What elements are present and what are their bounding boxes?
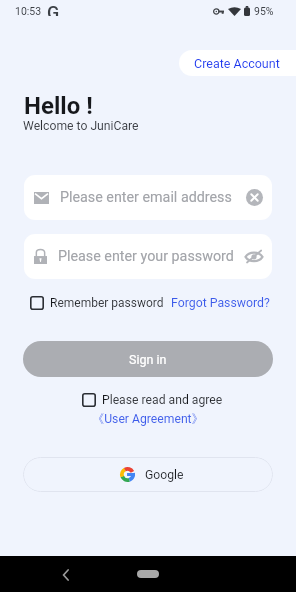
staticText: Forgot Password? — [171, 296, 270, 310]
staticText: Please read and agree — [102, 393, 223, 407]
button[interactable]: Sign in — [23, 341, 273, 377]
staticText: Please enter your password — [58, 248, 234, 265]
button[interactable]: Google — [23, 457, 273, 492]
staticText: Create Account — [194, 56, 280, 71]
button[interactable]: Please read and agree — [82, 393, 223, 407]
button[interactable]: Show password — [245, 249, 263, 264]
staticText: Google — [145, 468, 184, 482]
staticText: 95% — [254, 5, 274, 17]
button[interactable]: Remember password — [30, 296, 164, 310]
staticText: Please enter email address — [60, 189, 232, 206]
staticText: 《User Agreement》 — [92, 411, 204, 426]
button[interactable]: Please enter your password — [24, 234, 272, 279]
staticText: G — [47, 2, 60, 16]
button[interactable]: Home — [137, 570, 159, 578]
staticText: Sign in — [129, 352, 167, 367]
staticText: Remember password — [50, 296, 164, 310]
staticText: 10:53 — [15, 5, 42, 17]
button[interactable]: Create Account — [179, 50, 296, 76]
button[interactable]: Please enter email address — [24, 175, 272, 220]
staticText: Hello ! — [24, 92, 93, 120]
button[interactable]: 《User Agreement》 — [92, 411, 204, 426]
button[interactable]: Clear — [246, 189, 263, 206]
button[interactable]: Back — [53, 562, 78, 587]
button[interactable]: Forgot Password? — [171, 296, 270, 310]
staticText: Welcome to JuniCare — [23, 119, 139, 133]
